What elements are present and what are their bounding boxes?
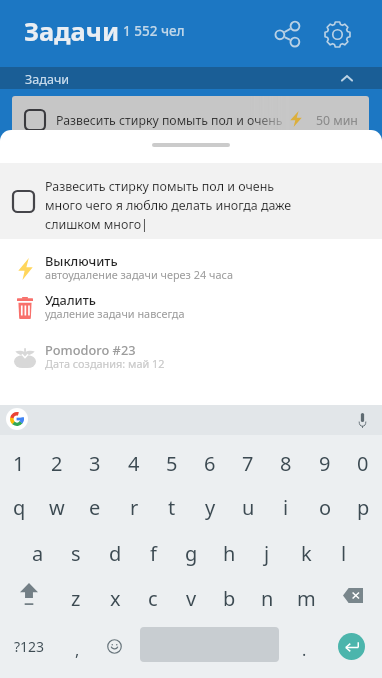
button[interactable]: 9 xyxy=(306,442,344,484)
button[interactable]: g xyxy=(172,532,210,574)
staticText: q xyxy=(13,494,26,521)
staticText: автоудаление задачи через 24 часа xyxy=(45,267,233,282)
staticText: Задачи xyxy=(24,14,120,49)
staticText: Дата создания: май 12 xyxy=(45,356,165,371)
staticText: . xyxy=(302,639,307,661)
button[interactable]: 5 xyxy=(153,442,191,484)
button[interactable]: Emoji xyxy=(99,631,129,661)
staticText: 4 xyxy=(128,450,140,477)
button[interactable]: Развесить стирку помыть пол и очень xyxy=(12,96,369,136)
button[interactable]: . xyxy=(289,626,319,666)
button[interactable]: b xyxy=(210,577,248,619)
button[interactable]: 3 xyxy=(76,442,114,484)
staticText: g xyxy=(185,540,198,567)
button[interactable]: Backspace xyxy=(334,577,371,614)
button[interactable] xyxy=(13,191,34,212)
button[interactable]: v xyxy=(172,577,210,619)
button[interactable]: Выключить xyxy=(0,247,382,291)
staticText: l xyxy=(341,540,347,567)
staticText: Выключить xyxy=(45,252,118,269)
staticText: i xyxy=(283,494,289,521)
button[interactable]: 7 xyxy=(229,442,267,484)
button[interactable]: Share xyxy=(265,12,309,56)
button[interactable]: Pomodoro #23 xyxy=(0,336,382,380)
button[interactable]: p xyxy=(344,486,382,528)
button[interactable]: i xyxy=(267,486,305,528)
staticText: 3 xyxy=(89,450,101,477)
staticText: удаление задачи навсегда xyxy=(45,306,185,321)
button[interactable]: r xyxy=(115,486,153,528)
button[interactable]: d xyxy=(96,532,134,574)
button[interactable]: m xyxy=(287,577,325,619)
button[interactable]: Google search xyxy=(6,408,28,430)
button[interactable]: 6 xyxy=(191,442,229,484)
staticText: z xyxy=(71,585,81,612)
staticText: j xyxy=(264,540,270,567)
staticText: Развесить стирку помыть пол и очень мног… xyxy=(45,178,297,233)
button[interactable]: a xyxy=(19,532,57,574)
button[interactable]: o xyxy=(306,486,344,528)
staticText: k xyxy=(301,540,312,567)
button[interactable]: s xyxy=(57,532,95,574)
button[interactable]: h xyxy=(210,532,248,574)
staticText: n xyxy=(261,585,274,612)
staticText: Удалить xyxy=(45,291,96,308)
staticText: x xyxy=(110,585,121,612)
button[interactable]: e xyxy=(76,486,114,528)
staticText: 7 xyxy=(242,450,254,477)
button[interactable]: Задачи xyxy=(0,67,382,89)
staticText: 0 xyxy=(357,450,369,477)
staticText: p xyxy=(357,494,370,521)
staticText: v xyxy=(186,585,197,612)
button[interactable]: k xyxy=(287,532,325,574)
button[interactable]: q xyxy=(0,486,38,528)
button[interactable]: c xyxy=(134,577,172,619)
staticText: 6 xyxy=(204,450,216,477)
button[interactable]: Voice input xyxy=(352,410,372,430)
staticText: m xyxy=(297,585,316,612)
button[interactable]: 0 xyxy=(344,442,382,484)
button[interactable]: , xyxy=(60,626,94,666)
button[interactable]: f xyxy=(134,532,172,574)
staticText: w xyxy=(49,494,65,521)
button[interactable]: z xyxy=(57,577,95,619)
staticText: 50 мин xyxy=(316,112,358,129)
staticText: 1 xyxy=(13,450,25,477)
staticText: Задачи xyxy=(25,71,70,88)
staticText: c xyxy=(148,585,158,612)
staticText: h xyxy=(223,540,236,567)
button[interactable]: x xyxy=(96,577,134,619)
button[interactable]: 4 xyxy=(115,442,153,484)
button[interactable]: j xyxy=(248,532,286,574)
button[interactable]: Shift xyxy=(10,575,48,613)
button[interactable]: 2 xyxy=(38,442,76,484)
button[interactable]: 1 xyxy=(0,442,38,484)
staticText: 8 xyxy=(280,450,292,477)
button[interactable]: Enter xyxy=(338,633,365,660)
button[interactable]: ?123 xyxy=(6,626,52,666)
staticText: f xyxy=(150,540,157,567)
staticText: 1 552 чел xyxy=(123,22,185,40)
staticText: , xyxy=(75,639,80,661)
staticText: Pomodoro #23 xyxy=(45,341,136,358)
button[interactable]: Settings xyxy=(315,12,359,56)
staticText: d xyxy=(109,540,122,567)
button[interactable]: u xyxy=(229,486,267,528)
staticText: s xyxy=(71,540,81,567)
button[interactable]: w xyxy=(38,486,76,528)
button[interactable]: y xyxy=(191,486,229,528)
staticText: b xyxy=(223,585,236,612)
staticText: Развесить стирку помыть пол и очень xyxy=(56,112,283,129)
staticText: ?123 xyxy=(14,637,45,656)
button[interactable]: Удалить xyxy=(0,286,382,330)
button[interactable]: t xyxy=(153,486,191,528)
button[interactable]: n xyxy=(248,577,286,619)
button[interactable]: l xyxy=(325,532,363,574)
staticText: e xyxy=(89,494,101,521)
staticText: u xyxy=(242,494,255,521)
button[interactable]: 8 xyxy=(267,442,305,484)
staticText: y xyxy=(205,494,216,521)
staticText: 2 xyxy=(51,450,63,477)
staticText: a xyxy=(32,540,44,567)
